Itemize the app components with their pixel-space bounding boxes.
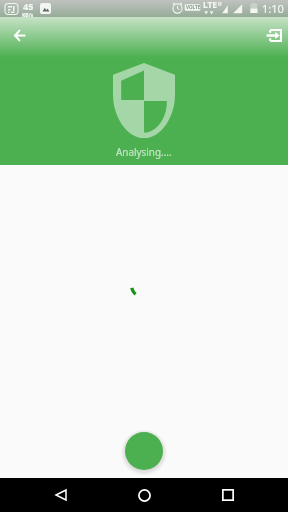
staticText: Analysing.... xyxy=(116,145,172,158)
button[interactable]: Start scan xyxy=(125,432,163,470)
staticText: LTE xyxy=(203,0,218,10)
staticText: VOLTE xyxy=(186,4,201,10)
button[interactable]: Back xyxy=(19,478,103,512)
button[interactable]: Home xyxy=(103,478,186,512)
button[interactable]: Exit xyxy=(261,22,287,48)
staticText: 1:10 xyxy=(262,1,284,16)
staticText: 45 xyxy=(23,0,34,12)
button[interactable]: Back xyxy=(6,22,32,48)
staticText: R xyxy=(218,0,222,8)
button[interactable]: Recents xyxy=(186,478,269,512)
staticText: KB/s xyxy=(22,12,34,17)
